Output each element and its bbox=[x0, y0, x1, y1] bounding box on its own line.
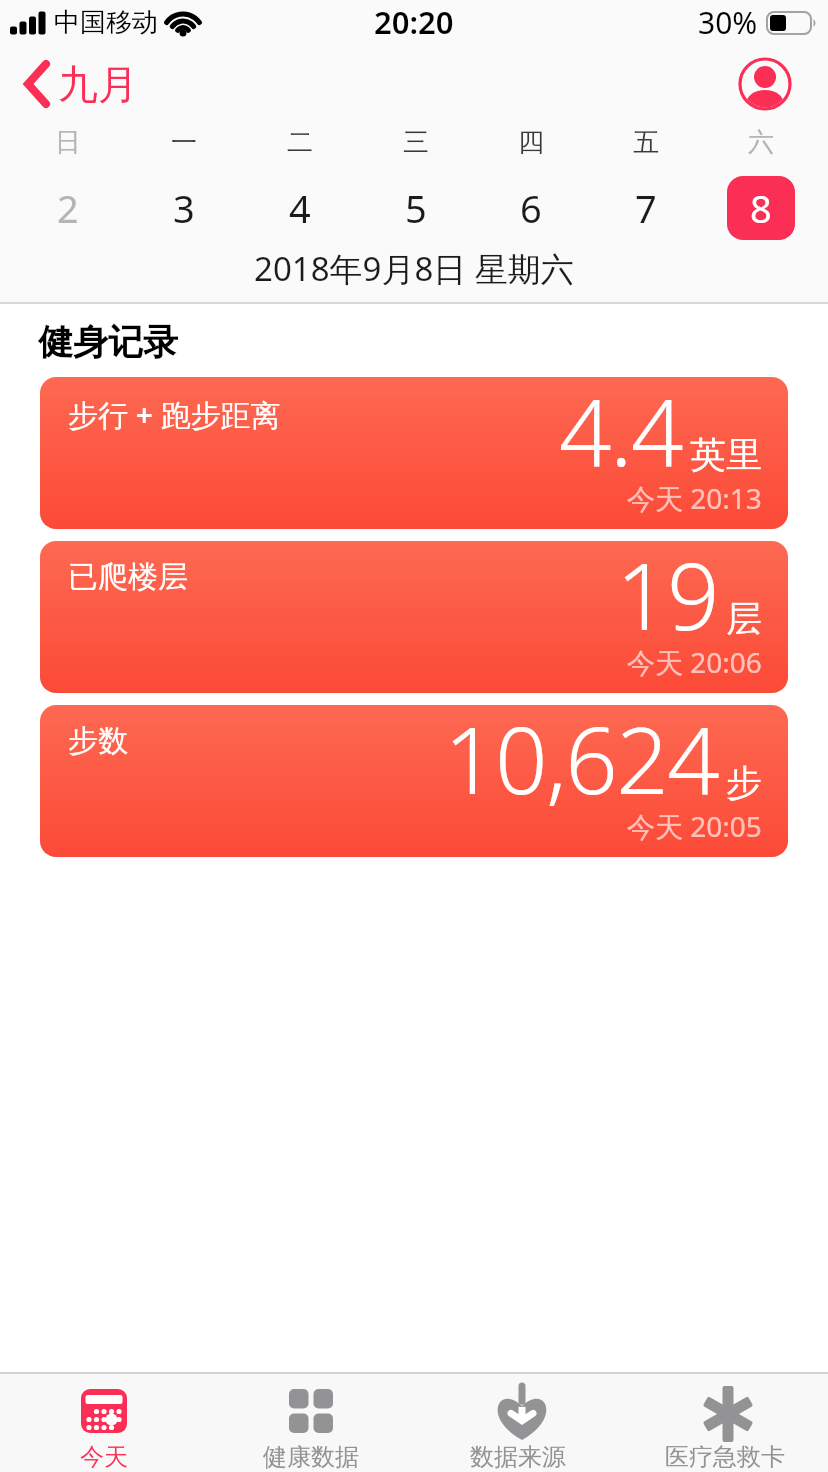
staticText: 数据来源 bbox=[470, 1442, 566, 1472]
staticText: 二 bbox=[287, 126, 313, 159]
staticText: 已爬楼层 bbox=[68, 558, 188, 596]
staticText: 英里 bbox=[690, 432, 762, 477]
staticText: 一 bbox=[171, 126, 197, 159]
staticText: 3 bbox=[173, 182, 195, 234]
staticText: 九月 bbox=[58, 59, 138, 109]
staticText: 19 bbox=[616, 541, 719, 657]
staticText: 中国移动 bbox=[54, 6, 158, 39]
staticText: 今天 20:05 bbox=[627, 807, 762, 845]
staticText: 今天 20:06 bbox=[627, 643, 762, 681]
staticText: 4 bbox=[289, 182, 311, 234]
staticText: 8 bbox=[750, 182, 772, 234]
staticText: 步 bbox=[726, 760, 762, 805]
staticText: 健身记录 bbox=[38, 320, 178, 364]
staticText: 层 bbox=[726, 596, 762, 641]
staticText: 30% bbox=[698, 2, 758, 43]
staticText: 今天 bbox=[80, 1442, 128, 1472]
staticText: 6 bbox=[520, 182, 542, 234]
staticText: 20:20 bbox=[374, 1, 454, 43]
staticText: 2 bbox=[57, 182, 79, 234]
staticText: 2018年9月8日 星期六 bbox=[254, 246, 574, 291]
staticText: 六 bbox=[748, 126, 774, 159]
staticText: 7 bbox=[635, 182, 657, 234]
staticText: 医疗急救卡 bbox=[665, 1442, 785, 1472]
staticText: 五 bbox=[633, 126, 659, 159]
staticText: 健康数据 bbox=[263, 1442, 359, 1472]
staticText: 10,624 bbox=[444, 705, 719, 821]
staticText: 四 bbox=[518, 126, 544, 159]
staticText: 日 bbox=[55, 126, 81, 159]
staticText: 步行 + 跑步距离 bbox=[68, 394, 281, 435]
staticText: 今天 20:13 bbox=[627, 479, 762, 517]
staticText: 三 bbox=[403, 126, 429, 159]
staticText: 5 bbox=[405, 182, 427, 234]
staticText: 4.4 bbox=[559, 377, 683, 493]
staticText: 步数 bbox=[68, 722, 128, 760]
